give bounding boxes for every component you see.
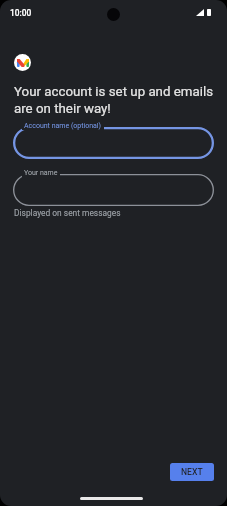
staticText: 10:00 [10, 8, 32, 18]
other: Gmail [14, 54, 31, 71]
other: Home gesture handle [80, 497, 143, 500]
staticText: NEXT [181, 467, 203, 477]
staticText: Your name [24, 169, 58, 177]
staticText: Account name (optional) [24, 122, 102, 130]
button[interactable]: NEXT [170, 463, 214, 481]
other: Battery [207, 9, 211, 16]
button[interactable]: Your name [13, 174, 214, 206]
other: Mobile signal [196, 9, 204, 16]
staticText: Displayed on sent messages [14, 208, 121, 218]
button[interactable]: Account name (optional) [13, 127, 214, 159]
staticText: Your account is set up and emails are on… [14, 84, 214, 117]
